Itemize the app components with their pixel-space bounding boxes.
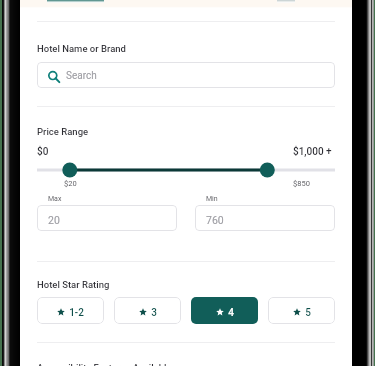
staticText: 1-2 — [69, 307, 84, 319]
button[interactable]: 3 — [114, 297, 181, 324]
button[interactable]: Search — [37, 62, 335, 88]
staticText: Hotel Star Rating — [37, 279, 110, 290]
staticText: 20 — [48, 214, 60, 226]
staticText: 760 — [206, 214, 224, 226]
staticText: 3 — [151, 307, 157, 319]
staticText: $0 — [37, 146, 49, 158]
staticText: Hotel Name or Brand — [37, 43, 126, 54]
other: Search — [48, 71, 60, 83]
button[interactable]: 5 — [268, 297, 335, 324]
staticText: Min — [206, 195, 218, 203]
staticText: $1,000 + — [293, 146, 332, 158]
button[interactable]: 4 — [191, 297, 258, 324]
button[interactable]: 20 — [37, 205, 177, 231]
staticText: Search — [66, 70, 97, 82]
button[interactable]: 760 — [195, 205, 335, 231]
staticText: 4 — [228, 307, 234, 319]
staticText: Max — [48, 195, 62, 203]
staticText: Price Range — [37, 126, 89, 137]
staticText: $850 — [293, 179, 310, 188]
staticText: 5 — [305, 307, 311, 319]
staticText: $20 — [64, 179, 77, 188]
staticText: Accessibility Features Available — [37, 362, 172, 366]
button[interactable]: 1-2 — [37, 297, 104, 324]
